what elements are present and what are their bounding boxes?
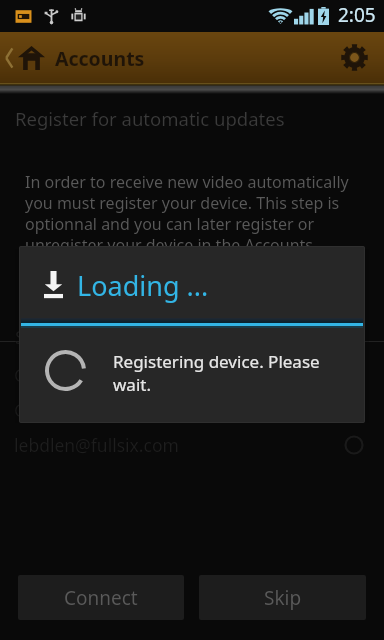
staticText: Google account (14, 398, 143, 422)
staticText: In order to receive new video automatica… (25, 171, 350, 277)
staticText: Google account (14, 363, 143, 387)
button[interactable]: Connect (18, 575, 184, 620)
staticText: Skip (264, 585, 302, 611)
staticText: Register for automatic updates (15, 106, 285, 131)
staticText: Registering device. Please wait. (113, 350, 325, 396)
button[interactable]: Settings (330, 32, 384, 83)
staticText: 2:05 (338, 2, 376, 28)
button[interactable]: lebdlen@fullsix.com (0, 428, 384, 462)
staticText: Loading ... (77, 267, 209, 304)
staticText: lebdlen@fullsix.com (14, 433, 179, 457)
button[interactable]: Skip (199, 575, 366, 620)
button[interactable]: Accounts (0, 32, 200, 83)
staticText: Accounts (55, 45, 145, 72)
button[interactable]: Google account (0, 393, 384, 427)
button[interactable]: Google account (0, 358, 384, 392)
staticText: Connect (64, 585, 138, 611)
staticText: Select an account (15, 324, 167, 349)
